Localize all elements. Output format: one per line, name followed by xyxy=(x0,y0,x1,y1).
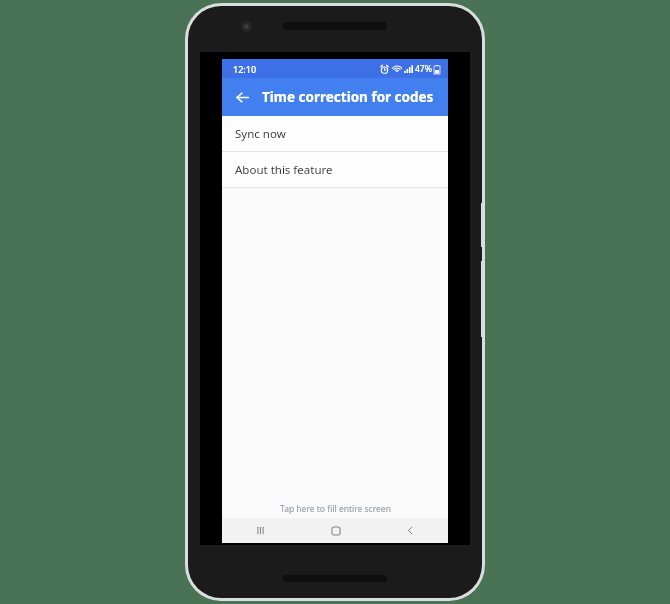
staticText: 47% xyxy=(415,63,432,75)
staticText: Tap here to fill entire screen xyxy=(280,503,391,515)
button[interactable]: Home xyxy=(298,518,373,543)
staticText: 12:10 xyxy=(233,63,257,75)
button[interactable]: Sync now xyxy=(222,116,448,151)
button[interactable]: Back xyxy=(373,518,448,543)
button[interactable]: About this feature xyxy=(222,152,448,187)
staticText: Sync now xyxy=(235,126,286,142)
button[interactable]: Back xyxy=(228,83,256,111)
button[interactable]: Recent apps xyxy=(222,518,298,543)
staticText: About this feature xyxy=(235,162,333,178)
button[interactable]: Tap here to fill entire screen xyxy=(222,499,448,518)
staticText: Time correction for codes xyxy=(262,88,434,106)
